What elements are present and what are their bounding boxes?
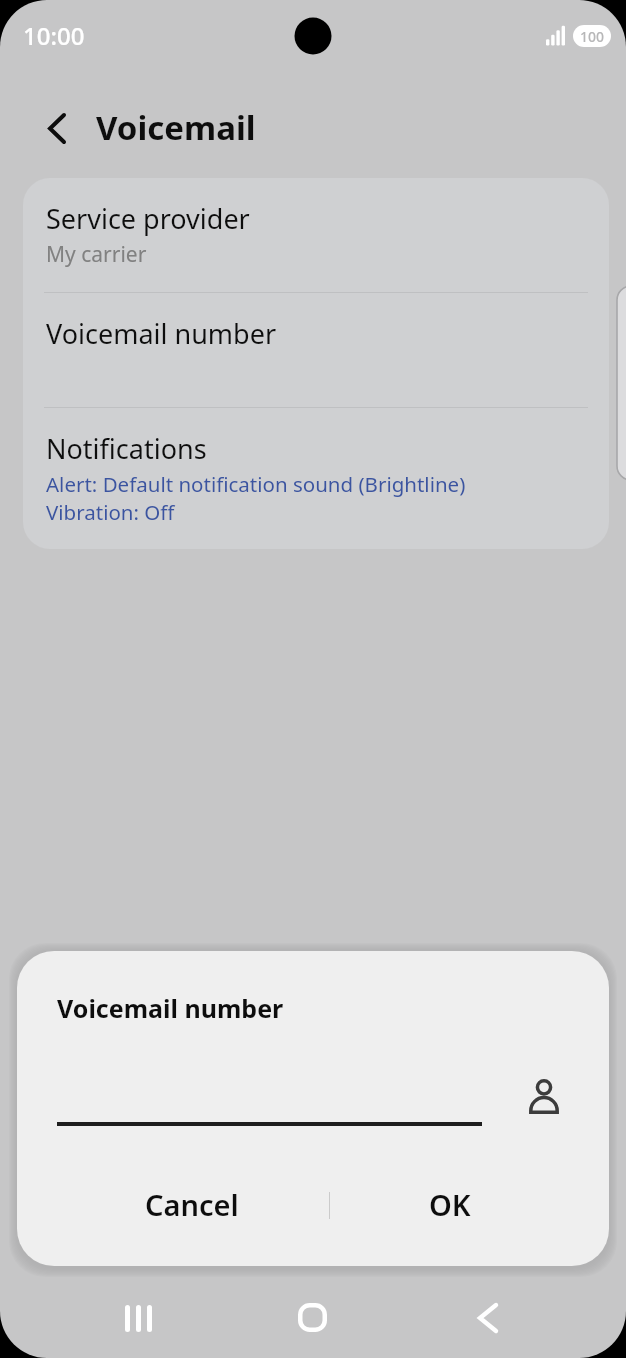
staticText: Voicemail [96,105,256,150]
button[interactable]: Voicemail number [23,293,609,407]
staticText: Cancel [145,1185,239,1224]
button[interactable]: Home [269,1280,355,1355]
button[interactable]: Choose contact [518,1070,570,1122]
staticText: My carrier [46,240,147,269]
button[interactable]: Notifications [23,408,609,549]
staticText: 10:00 [23,19,85,52]
staticText: Notifications [46,430,207,467]
staticText: Service provider [46,200,250,237]
staticText: OK [429,1185,471,1224]
staticText: Voicemail number [46,315,277,352]
staticText: Vibration: Off [46,498,175,526]
staticText: Voicemail number [57,991,284,1025]
button[interactable]: Recent apps [95,1281,181,1356]
button[interactable]: OK [321,1169,579,1239]
staticText: 100 [580,27,605,46]
staticText: Alert: Default notification sound (Brigh… [46,470,466,498]
button[interactable]: Back [33,104,81,152]
button[interactable]: Cancel [63,1169,321,1239]
button[interactable]: Back [445,1280,531,1355]
button[interactable]: Service provider [23,178,609,292]
